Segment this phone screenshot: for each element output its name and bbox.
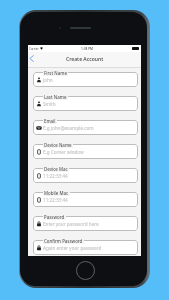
button[interactable]: 11:22:33:44 — [28, 164, 141, 188]
staticText: Last Name — [44, 94, 67, 100]
button[interactable]: Enter your password here — [28, 212, 141, 236]
staticText: 11:22:33:44 — [43, 197, 68, 203]
staticText: Smith — [43, 101, 56, 107]
button[interactable]: 11:22:33:44 — [28, 188, 141, 212]
staticText: John — [43, 77, 53, 83]
staticText: Create Account — [66, 56, 104, 63]
staticText: Email — [44, 118, 56, 124]
staticText: Password — [44, 214, 65, 220]
button[interactable]: Again enter your password — [28, 236, 141, 256]
staticText: Confirm Password — [44, 238, 83, 244]
button[interactable]: Back — [26, 52, 37, 64]
staticText: 1:38 PM — [81, 47, 94, 51]
button[interactable]: E.g john@example.com — [28, 116, 141, 140]
staticText: Device Name — [44, 142, 72, 148]
staticText: Carrier — [29, 47, 39, 51]
staticText: E.g john@example.com — [43, 125, 94, 131]
button[interactable]: John — [28, 68, 141, 92]
staticText: Enter your password here — [43, 221, 99, 227]
staticText: E.g Corner window — [43, 149, 84, 155]
staticText: 11:22:33:44 — [43, 173, 68, 179]
button[interactable]: E.g Corner window — [28, 140, 141, 164]
staticText: First Name — [44, 70, 67, 76]
staticText: Mobile Mac — [44, 190, 69, 196]
button[interactable]: Smith — [28, 92, 141, 116]
staticText: Again enter your password — [43, 245, 102, 251]
staticText: Device Mac — [44, 166, 68, 172]
